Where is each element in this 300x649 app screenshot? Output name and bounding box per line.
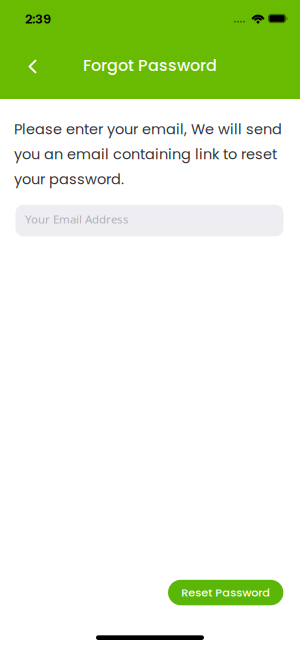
staticText: Reset Password bbox=[181, 585, 270, 600]
staticText: Forgot Password bbox=[83, 54, 217, 77]
staticText: Please enter your email, We will send bbox=[14, 119, 282, 139]
button[interactable]: Back bbox=[16, 52, 48, 81]
button[interactable]: Reset Password bbox=[168, 580, 283, 605]
staticText: your password. bbox=[14, 169, 124, 189]
staticText: you an email containing link to reset bbox=[14, 144, 277, 164]
staticText: 2:39 bbox=[25, 10, 51, 28]
button[interactable]: Your Email Address bbox=[15, 205, 283, 236]
staticText: Your Email Address bbox=[25, 211, 129, 227]
